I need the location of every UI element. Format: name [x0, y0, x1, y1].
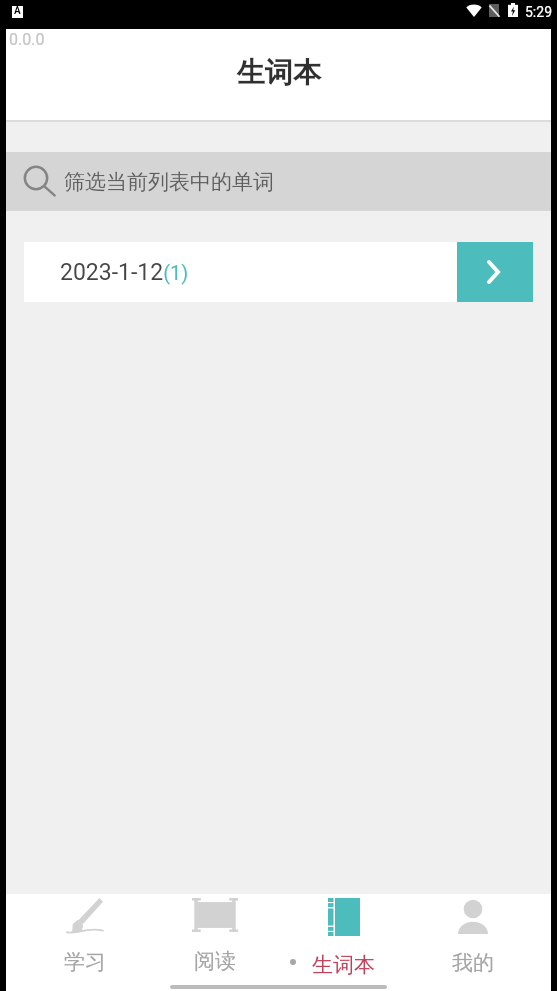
button[interactable]: 我的	[408, 894, 537, 981]
button[interactable]: 阅读	[150, 894, 279, 981]
other: Open word list	[457, 242, 533, 302]
button[interactable]: 筛选当前列表中的单词	[6, 152, 551, 211]
staticText: 5:29	[525, 4, 552, 20]
staticText: 生词本	[312, 952, 375, 978]
staticText: 阅读	[194, 948, 236, 974]
button[interactable]: 生词本	[279, 894, 408, 981]
staticText: 我的	[452, 950, 494, 976]
staticText: 筛选当前列表中的单词	[64, 169, 274, 195]
button[interactable]: 2023-1-12(1)	[24, 242, 533, 302]
button[interactable]: 学习	[20, 894, 150, 981]
staticText: 学习	[64, 949, 106, 975]
staticText: 生词本	[237, 55, 321, 90]
staticText: 0.0.0	[9, 30, 45, 49]
staticText: 2023-1-12(1)	[60, 259, 189, 286]
staticText: A	[14, 5, 21, 17]
